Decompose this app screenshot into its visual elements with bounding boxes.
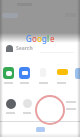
button[interactable]: App	[23, 99, 32, 108]
staticText: o	[37, 33, 42, 44]
button[interactable]: Home	[36, 127, 45, 132]
button[interactable]: Messages	[3, 67, 14, 79]
staticText: Search	[16, 45, 33, 52]
staticText: l	[47, 33, 50, 44]
button[interactable]: Meet	[19, 67, 30, 79]
button[interactable]: Keep	[57, 69, 68, 75]
button[interactable]: Search	[6, 45, 13, 52]
staticText: g	[42, 33, 47, 44]
button[interactable]: Account	[6, 99, 16, 109]
button[interactable]: More apps	[75, 68, 80, 79]
staticText: e	[50, 33, 55, 44]
staticText: G	[26, 33, 32, 44]
staticText: o	[32, 33, 37, 44]
